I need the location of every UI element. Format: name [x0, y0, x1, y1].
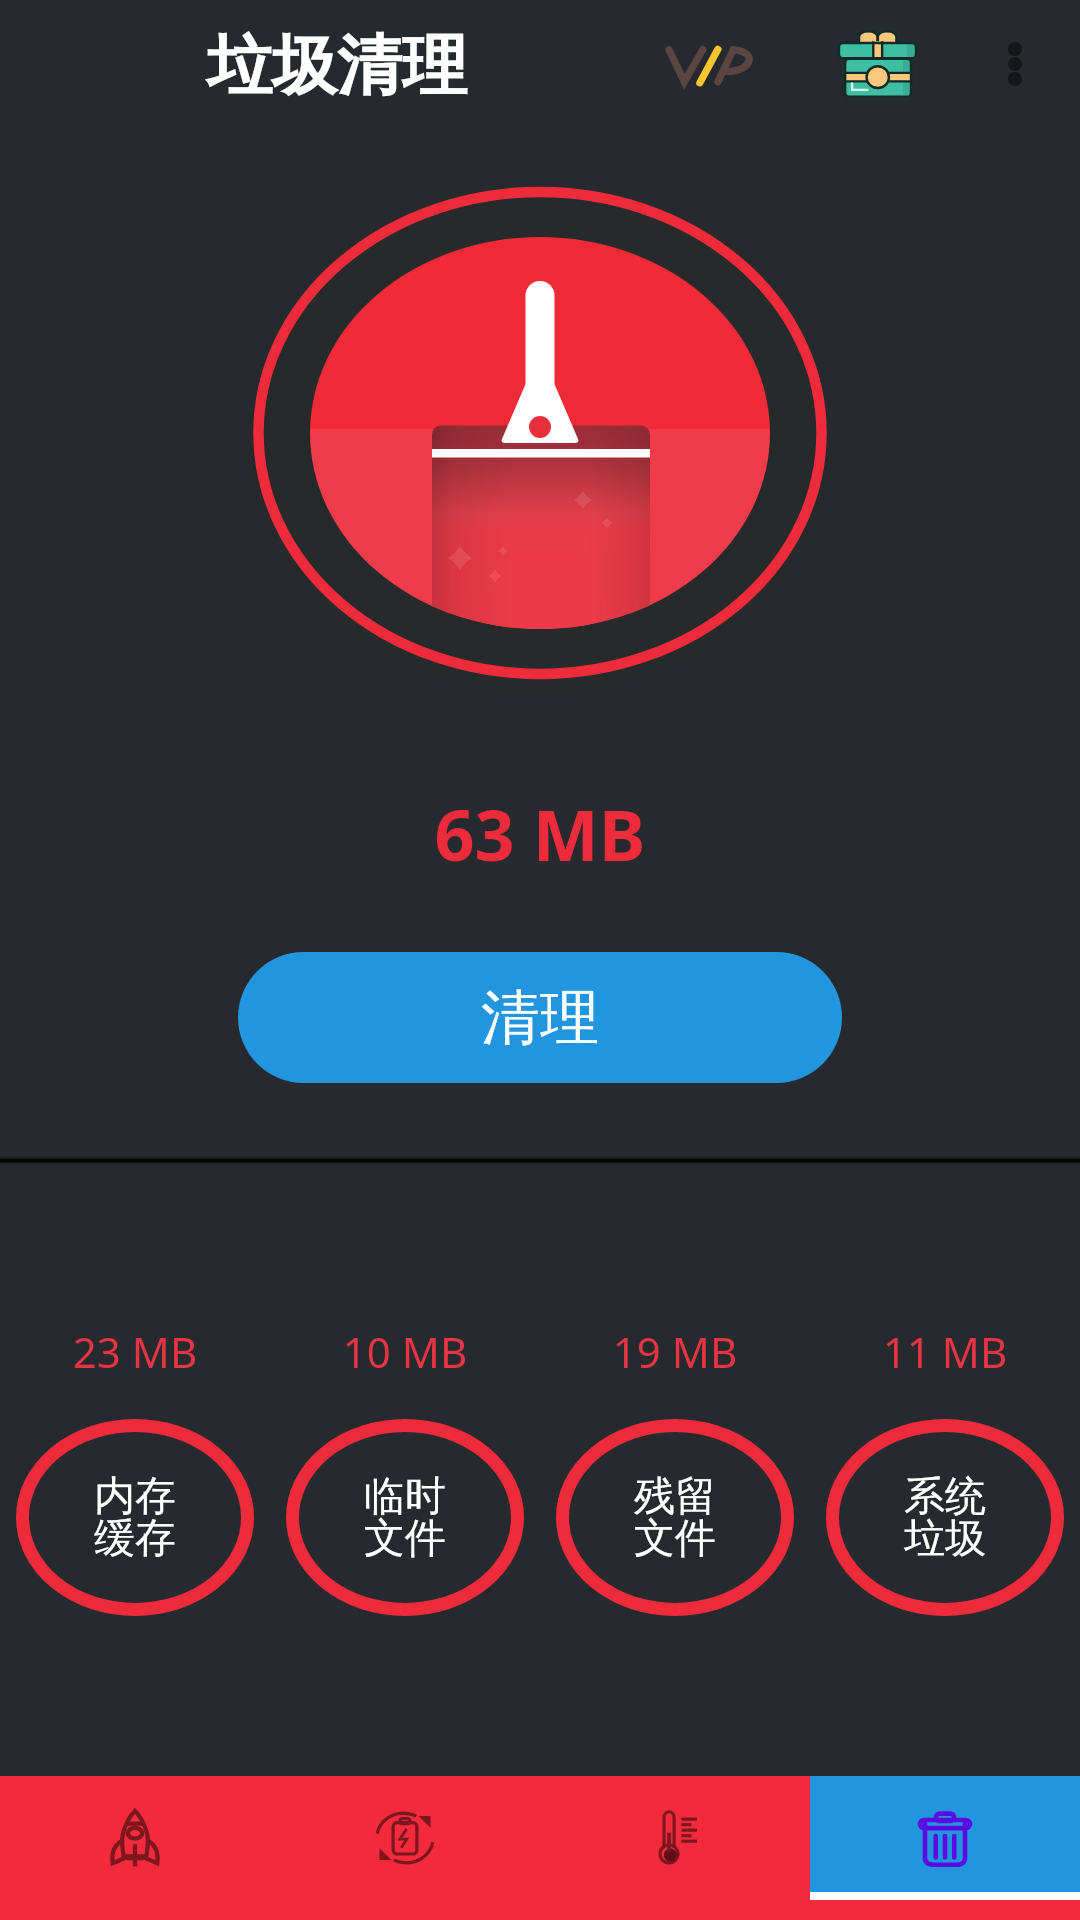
staticText: 残留 文件 — [634, 1471, 716, 1565]
button[interactable]: Junk scan result — [244, 176, 836, 689]
staticText: 11 MB — [826, 1323, 1064, 1380]
button[interactable]: Junk clean — [810, 1776, 1080, 1920]
button[interactable]: 11 MB — [826, 1320, 1064, 1616]
staticText: 10 MB — [286, 1323, 524, 1380]
button[interactable]: 清理 — [238, 952, 842, 1083]
button[interactable]: 23 MB — [16, 1320, 254, 1616]
staticText: 23 MB — [16, 1323, 254, 1380]
button[interactable]: 19 MB — [556, 1320, 794, 1616]
staticText: 临时 文件 — [364, 1471, 446, 1565]
staticText: 系统 垃圾 — [904, 1471, 986, 1565]
button[interactable]: Battery saver — [270, 1776, 540, 1920]
button[interactable]: VIP — [643, 14, 773, 114]
staticText: 清理 — [481, 981, 599, 1055]
staticText: 垃圾清理 — [207, 25, 467, 107]
button[interactable]: Phone boost — [0, 1776, 270, 1920]
button[interactable]: Gift — [813, 10, 939, 116]
staticText: 63 MB — [0, 786, 1080, 881]
button[interactable]: More options — [976, 12, 1054, 116]
button[interactable]: 10 MB — [286, 1320, 524, 1616]
staticText: 19 MB — [556, 1323, 794, 1380]
button[interactable]: CPU cooler — [540, 1776, 810, 1920]
staticText: 内存 缓存 — [94, 1471, 176, 1565]
